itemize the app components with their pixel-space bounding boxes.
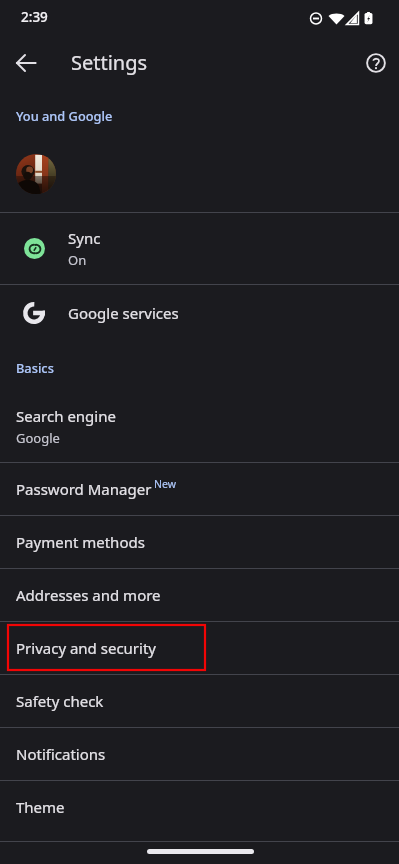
staticText: Safety check [16, 691, 104, 711]
button[interactable]: Back [2, 39, 50, 87]
button[interactable]: Sync [0, 212, 399, 284]
staticText: Google services [68, 303, 179, 323]
staticText: Search engine [16, 406, 116, 426]
staticText: Basics [16, 359, 54, 376]
button[interactable]: Help [354, 41, 398, 85]
staticText: Notifications [16, 744, 106, 764]
staticText: Privacy and security [16, 638, 156, 658]
button[interactable]: Theme [0, 780, 399, 833]
staticText: Addresses and more [16, 585, 161, 605]
staticText: On [68, 251, 87, 269]
staticText: Google [16, 429, 60, 447]
button[interactable]: Notifications [0, 727, 399, 780]
button[interactable]: Google account [0, 135, 399, 212]
staticText: Sync [68, 228, 101, 248]
staticText: Payment methods [16, 532, 145, 552]
button[interactable]: Search engine [0, 390, 399, 462]
button[interactable]: Privacy and security [0, 621, 399, 674]
button[interactable]: Password Manager New [0, 462, 399, 515]
staticText: Theme [16, 797, 65, 817]
button[interactable]: Safety check [0, 674, 399, 727]
staticText: Settings [71, 49, 148, 76]
button[interactable]: Payment methods [0, 515, 399, 568]
staticText: 2:39 [21, 8, 48, 26]
staticText: You and Google [16, 107, 113, 124]
staticText: Password Manager New [16, 477, 177, 500]
button[interactable]: Addresses and more [0, 568, 399, 621]
button[interactable]: Google services [0, 284, 399, 342]
